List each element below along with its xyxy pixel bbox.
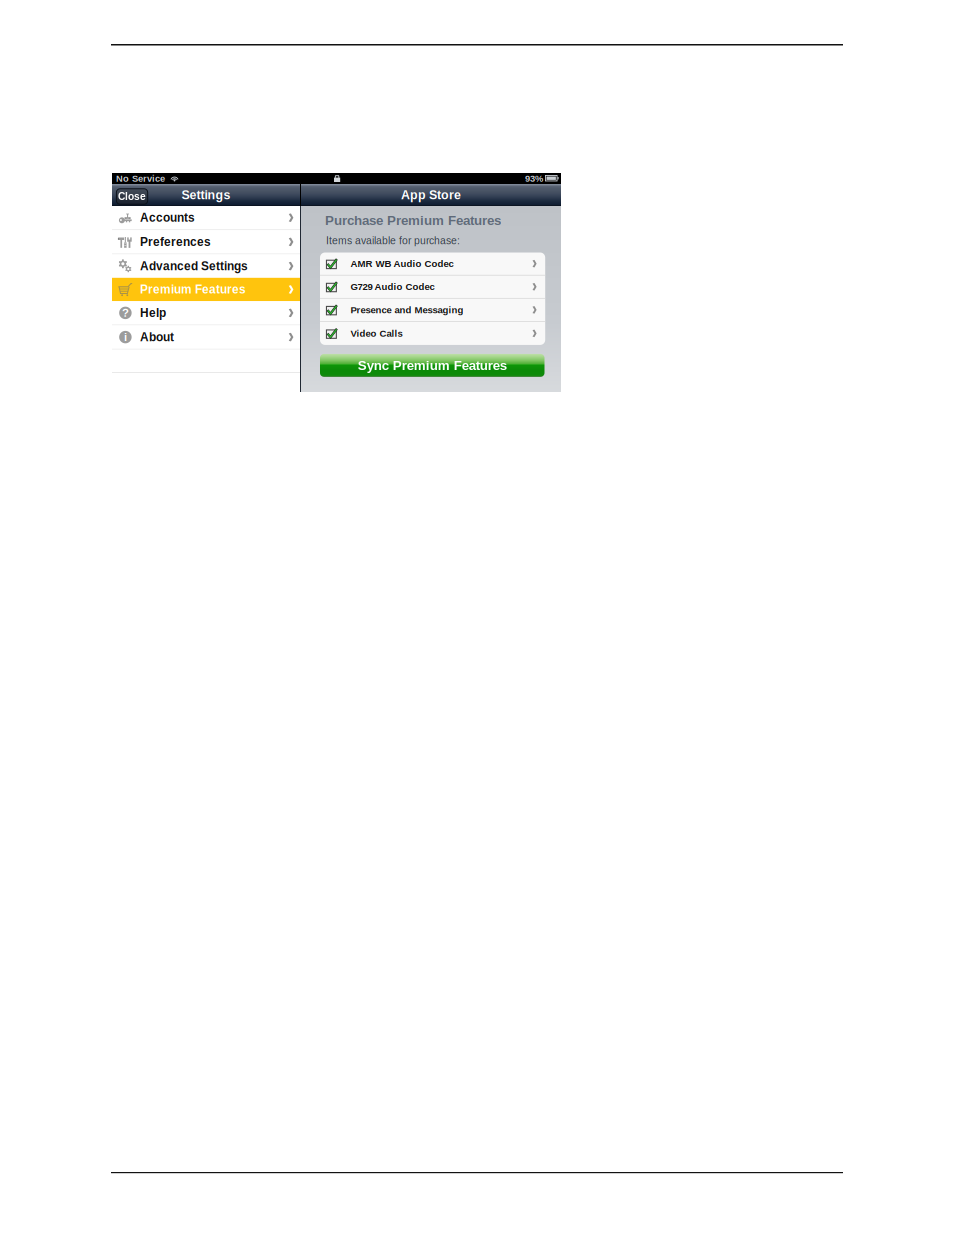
button[interactable]: Presence and Messaging: [320, 299, 545, 322]
button[interactable]: Premium Features: [112, 278, 300, 301]
staticText: Presence and Messaging: [350, 304, 463, 315]
staticText: 93%: [525, 173, 543, 184]
button[interactable]: Sync Premium Features: [320, 354, 544, 377]
staticText: Advanced Settings: [140, 259, 248, 273]
staticText: G729 Audio Codec: [350, 281, 434, 292]
staticText: No Service: [116, 173, 165, 184]
staticText: About: [140, 330, 174, 344]
staticText: Preferences: [140, 235, 211, 249]
staticText: i: [124, 331, 127, 343]
staticText: App Store: [401, 188, 461, 202]
button[interactable]: i: [112, 325, 300, 349]
button[interactable]: Preferences: [112, 230, 300, 254]
button[interactable]: Close: [116, 189, 148, 204]
button[interactable]: Advanced Settings: [112, 254, 300, 278]
staticText: Video Calls: [350, 328, 402, 339]
staticText: Sync Premium Features: [358, 358, 507, 373]
staticText: Purchase Premium Features: [325, 213, 501, 228]
button[interactable]: G729 Audio Codec: [320, 276, 545, 299]
staticText: ?: [122, 307, 129, 319]
button[interactable]: AMR WB Audio Codec: [320, 252, 545, 276]
staticText: AMR WB Audio Codec: [350, 258, 453, 269]
staticText: Premium Features: [140, 283, 246, 296]
staticText: Accounts: [140, 211, 195, 224]
button[interactable]: ?: [112, 301, 300, 325]
staticText: Items available for purchase:: [326, 235, 460, 246]
button[interactable]: Video Calls: [320, 322, 545, 345]
staticText: Settings: [181, 188, 230, 202]
button[interactable]: Accounts: [112, 206, 300, 229]
staticText: Close: [118, 191, 146, 202]
staticText: Help: [140, 306, 166, 320]
